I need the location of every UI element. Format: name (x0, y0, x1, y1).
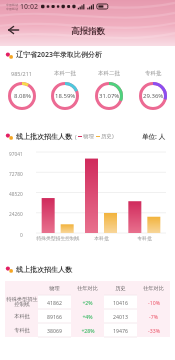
staticText: +4% (82, 313, 93, 320)
staticText: 41862 (47, 299, 62, 306)
staticText: -7% (149, 313, 158, 320)
staticText: 中国移动 (6, 3, 18, 7)
staticText: 本科批 (14, 313, 30, 320)
staticText: 特殊类型招生控制线 (36, 235, 80, 241)
staticText: +2% (82, 299, 93, 306)
staticText: 24013 (113, 313, 128, 320)
staticText: 29.36% (143, 92, 164, 100)
staticText: 专科批 (145, 70, 162, 77)
staticText: -10% (148, 299, 160, 306)
staticText: 本科一批 (54, 70, 76, 77)
staticText: 物理 (38, 285, 71, 292)
staticText: 历史 (104, 285, 137, 292)
staticText: 10416 (113, 299, 128, 306)
staticText: 往年对比 (137, 285, 170, 292)
staticText: 线上批次招生人数 (16, 132, 72, 141)
staticText: 24260 (9, 211, 23, 218)
staticText: 31.07% (99, 92, 120, 100)
button[interactable]: Back (3, 20, 23, 40)
staticText: 38069 (47, 327, 62, 334)
staticText: 历史) (101, 132, 114, 140)
staticText: -33% (148, 327, 160, 334)
staticText: 19476 (113, 327, 128, 334)
staticText: 专科批 (123, 235, 166, 241)
staticText: 8.08% (14, 92, 31, 100)
staticText: 专科批 (14, 327, 30, 334)
staticText: 48520 (9, 191, 23, 198)
staticText: 10:02 (20, 2, 38, 12)
staticText: ( (75, 133, 77, 140)
staticText: 辽宁省2023年录取比例分析 (16, 50, 103, 60)
staticText: +28% (81, 327, 95, 334)
staticText: 本科批 (80, 235, 123, 241)
staticText: 97041 (9, 151, 23, 158)
staticText: 中国移动 (6, 7, 18, 11)
staticText: 特殊类型招生 控制线 (6, 296, 38, 308)
staticText: 89166 (47, 313, 62, 320)
staticText: 72780 (9, 171, 23, 178)
staticText: 18.59% (55, 92, 76, 100)
staticText: 985/211 (11, 70, 32, 77)
staticText: 物理 (83, 133, 94, 140)
staticText: 单位: 人 (142, 132, 166, 141)
staticText: 0 (20, 232, 23, 239)
staticText: 线上批次招生人数 (16, 265, 72, 274)
staticText: 高报指数 (71, 26, 105, 37)
staticText: 往年对比 (71, 285, 104, 292)
staticText: 本科二批 (98, 70, 120, 77)
